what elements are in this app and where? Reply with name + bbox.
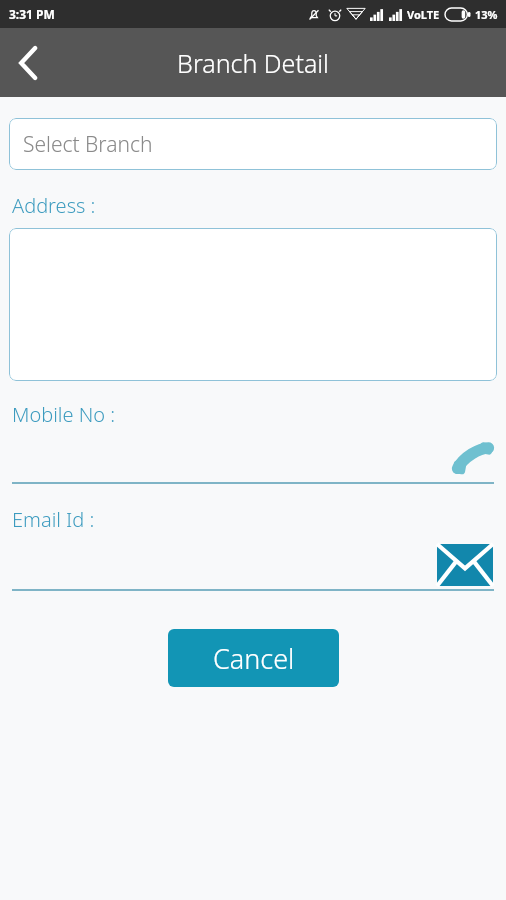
button[interactable]: Email: [436, 541, 494, 589]
staticText: Address :: [12, 192, 96, 219]
button[interactable]: Email: [0, 541, 506, 589]
button[interactable]: [9, 228, 497, 381]
button[interactable]: Select Branch: [9, 118, 497, 170]
staticText: VoLTE: [407, 7, 440, 22]
staticText: Branch Detail: [177, 46, 329, 80]
staticText: Mobile No :: [12, 401, 116, 428]
button[interactable]: Call: [0, 436, 506, 482]
button[interactable]: Call: [449, 436, 495, 482]
button[interactable]: Back: [0, 35, 56, 91]
button[interactable]: Cancel: [168, 629, 339, 687]
staticText: 3:31 PM: [9, 6, 55, 22]
staticText: Cancel: [213, 640, 295, 677]
staticText: Email Id :: [12, 506, 95, 533]
staticText: 13%: [475, 7, 498, 22]
staticText: Select Branch: [23, 130, 153, 159]
